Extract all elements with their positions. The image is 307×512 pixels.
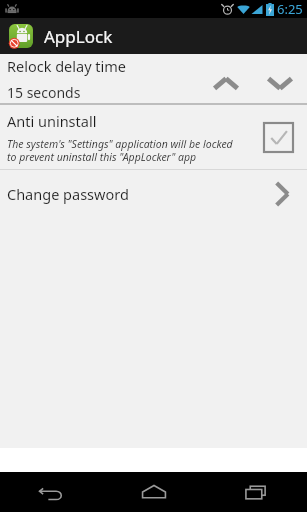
staticText: AppLock [44, 25, 113, 48]
button[interactable]: Change password [0, 170, 307, 218]
button[interactable]: Back [0, 472, 103, 512]
button[interactable]: Home [103, 472, 205, 512]
staticText: 15 seconds [7, 83, 81, 102]
button[interactable]: Recent apps [205, 472, 307, 512]
staticText: Anti uninstall [7, 111, 97, 131]
button[interactable]: Relock delay time [0, 54, 307, 103]
other: Change password [267, 179, 297, 209]
button[interactable]: Anti uninstall checkbox [261, 120, 295, 154]
staticText: 6:25 [277, 0, 303, 18]
staticText: The system's "Settings" application will… [7, 137, 239, 164]
staticText: Change password [7, 184, 129, 204]
staticText: Relock delay time [7, 56, 127, 76]
button[interactable]: Increase delay [205, 68, 247, 98]
button[interactable]: Anti uninstall [0, 105, 307, 169]
button[interactable]: Decrease delay [259, 68, 301, 98]
